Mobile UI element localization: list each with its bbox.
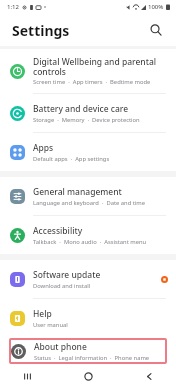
staticText: User manual (33, 321, 68, 329)
staticText: Talkback · Mono audio · Assistant menu (33, 238, 147, 246)
button[interactable]: About phone (9, 338, 167, 364)
staticText: Help (33, 308, 52, 320)
staticText: Status · Legal information · Phone name (34, 354, 150, 362)
button[interactable]: Accessibility (0, 216, 176, 254)
button[interactable]: General management (0, 177, 176, 215)
staticText: About phone (34, 341, 87, 353)
staticText: Accessibility (33, 225, 83, 237)
staticText: Battery and device care (33, 103, 129, 115)
staticText: Language and keyboard · Date and time (33, 199, 146, 207)
button[interactable]: Search settings (145, 19, 167, 41)
button[interactable]: Software update (0, 260, 176, 298)
button[interactable]: Apps (0, 133, 176, 171)
staticText: General management (33, 186, 122, 198)
staticText: Screen time · App timers · Bedtime mode (33, 78, 151, 86)
staticText: Default apps · App settings (33, 155, 110, 163)
button[interactable]: Battery and device care (0, 94, 176, 132)
button[interactable]: Help (0, 299, 176, 337)
staticText: 100% (148, 3, 164, 11)
staticText: Download and install (33, 282, 91, 290)
staticText: Software update (33, 269, 101, 281)
staticText: Apps (33, 142, 54, 154)
button[interactable]: Home (75, 365, 101, 387)
button[interactable]: Recent apps (14, 365, 40, 387)
staticText: Storage · Memory · Device protection (33, 116, 140, 124)
button[interactable]: Digital Wellbeing and parental controls (0, 49, 176, 93)
staticText: Digital Wellbeing and parental controls (33, 56, 168, 77)
staticText: 1:12 (7, 3, 19, 11)
staticText: Settings (12, 21, 70, 40)
button[interactable]: Back (136, 365, 162, 387)
